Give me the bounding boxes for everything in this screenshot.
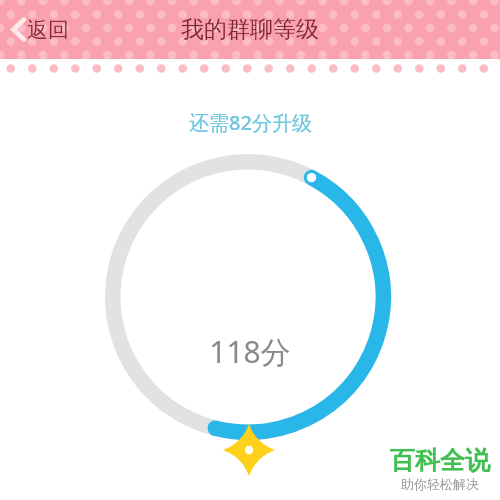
staticText: 助你轻松解决 — [401, 476, 479, 492]
button[interactable]: 返回 — [5, 11, 74, 48]
staticText: 我的群聊等级 — [181, 15, 319, 44]
staticText: 118分 — [209, 331, 291, 372]
staticText: 百科全说 — [390, 445, 490, 476]
staticText: 返回 — [27, 17, 69, 43]
staticText: 还需82分升级 — [189, 109, 312, 136]
